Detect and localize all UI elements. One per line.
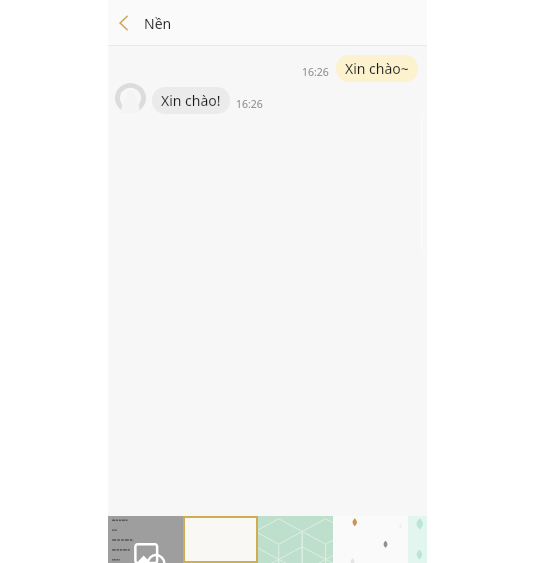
button[interactable] — [108, 516, 183, 563]
button[interactable] — [258, 516, 333, 563]
button[interactable]: Back — [108, 7, 140, 39]
staticText: Nền — [144, 14, 172, 33]
staticText: 16:26 — [302, 65, 329, 79]
button[interactable]: Xin chào~ — [336, 55, 418, 82]
button[interactable]: Xin chào! — [152, 87, 230, 114]
staticText: Xin chào! — [161, 91, 221, 110]
button[interactable] — [333, 516, 408, 563]
staticText: 16:26 — [236, 97, 263, 111]
button[interactable] — [408, 516, 427, 563]
button[interactable]: Selected background — [183, 516, 258, 563]
staticText: Xin chào~ — [345, 59, 409, 78]
